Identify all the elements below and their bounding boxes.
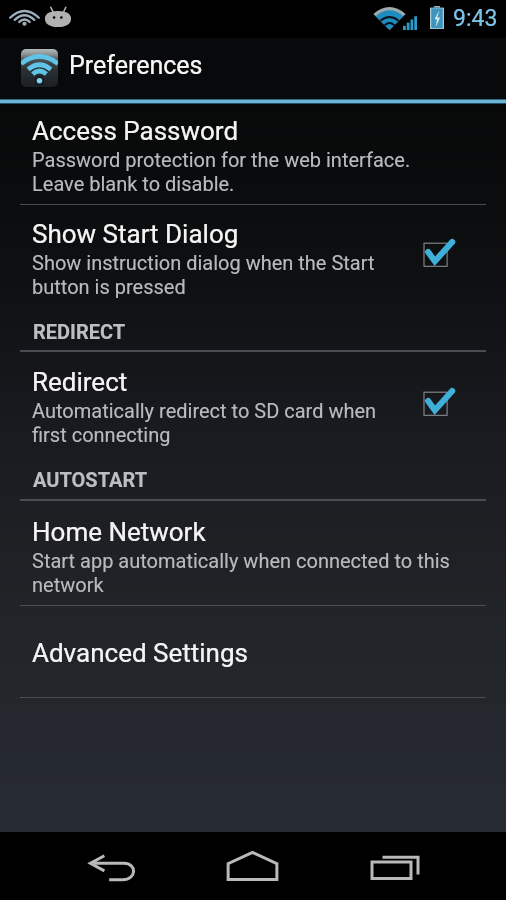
button[interactable]: Redirect (0, 352, 506, 455)
staticText: 9:43 (453, 5, 498, 32)
staticText: Start app automatically when connected t… (32, 549, 450, 597)
staticText: Password protection for the web interfac… (32, 148, 411, 196)
button[interactable]: Home Network (0, 501, 506, 605)
staticText: AUTOSTART (33, 468, 148, 491)
staticText: Preferences (69, 51, 203, 80)
button[interactable]: Back (43, 832, 183, 900)
staticText: REDIRECT (33, 320, 126, 343)
button[interactable]: Show Start Dialog (0, 205, 506, 307)
staticText: Access Password (32, 116, 239, 146)
staticText: Show Start Dialog (32, 219, 239, 249)
staticText: Show instruction dialog when the Start b… (32, 251, 375, 299)
button[interactable]: Toggle Redirect (406, 376, 464, 432)
staticText: Advanced Settings (32, 638, 248, 668)
button[interactable]: Access Password (0, 102, 506, 204)
button[interactable]: Recent apps (323, 832, 463, 900)
staticText: Redirect (32, 367, 128, 397)
button[interactable]: Home (183, 832, 323, 900)
staticText: Automatically redirect to SD card when f… (32, 399, 377, 447)
button[interactable]: Toggle Show Start Dialog (406, 227, 464, 283)
staticText: Home Network (32, 517, 206, 547)
button[interactable]: Advanced Settings (0, 606, 506, 697)
